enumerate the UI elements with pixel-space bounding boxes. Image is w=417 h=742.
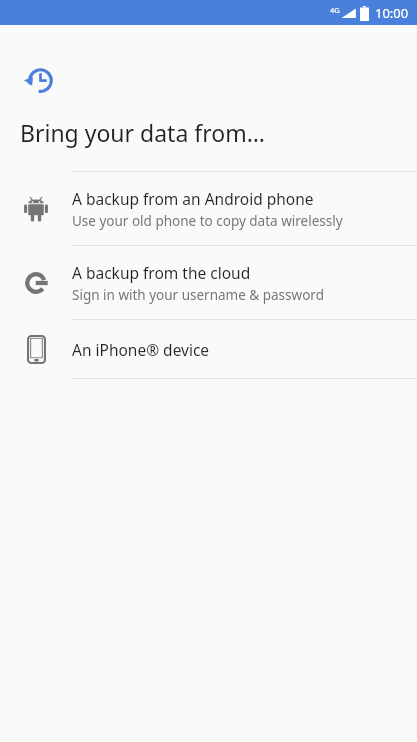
staticText: Sign in with your username & password <box>72 286 324 304</box>
staticText: A backup from an Android phone <box>72 188 314 209</box>
staticText: A backup from the cloud <box>72 262 251 283</box>
button[interactable]: A backup from an Android phone <box>0 172 417 245</box>
staticText: Bring your data from… <box>20 117 265 148</box>
staticText: An iPhone® device <box>72 339 210 360</box>
other: Restore <box>24 65 54 95</box>
staticText: Use your old phone to copy data wireless… <box>72 212 343 230</box>
button[interactable]: An iPhone® device <box>0 320 417 378</box>
staticText: 4G <box>330 5 340 15</box>
button[interactable]: A backup from the cloud <box>0 246 417 319</box>
staticText: 10:00 <box>375 4 409 22</box>
